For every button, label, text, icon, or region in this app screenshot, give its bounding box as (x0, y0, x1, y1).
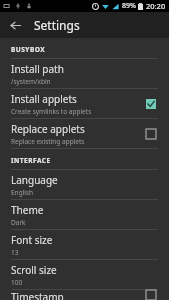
staticText: Install path (11, 62, 64, 76)
staticText: Settings (34, 17, 80, 33)
staticText: English (11, 188, 34, 197)
staticText: 100 (11, 278, 23, 287)
button[interactable]: Scroll size (0, 260, 169, 289)
button[interactable]: Disabled (142, 125, 160, 143)
staticText: Scroll size (11, 263, 57, 277)
button[interactable]: Navigate up (5, 15, 25, 35)
staticText: /system/xbin (11, 77, 51, 86)
button[interactable]: Disabled (142, 290, 160, 300)
staticText: BUSYBOX (11, 45, 46, 54)
staticText: Replace existing applets (11, 137, 85, 146)
staticText: INTERFACE (11, 156, 51, 165)
staticText: Replace applets (11, 122, 85, 136)
button[interactable]: Timestamp (0, 290, 169, 300)
button[interactable]: Language (0, 170, 169, 199)
staticText: Language (11, 173, 58, 187)
button[interactable]: Replace applets (0, 119, 169, 148)
staticText: 13 (11, 248, 19, 257)
staticText: 20:20 (146, 1, 166, 11)
staticText: Create symlinks to applets (11, 107, 92, 116)
button[interactable]: Install path (0, 59, 169, 88)
staticText: Theme (11, 203, 44, 217)
staticText: Install applets (11, 92, 77, 106)
button[interactable]: Font size (0, 230, 169, 259)
button[interactable]: Install applets (0, 89, 169, 118)
button[interactable]: Theme (0, 200, 169, 229)
button[interactable]: Enabled (142, 95, 160, 113)
staticText: Font size (11, 233, 53, 247)
staticText: 89% (122, 1, 136, 11)
staticText: Timestamp (11, 290, 64, 300)
staticText: Dark (11, 218, 26, 227)
